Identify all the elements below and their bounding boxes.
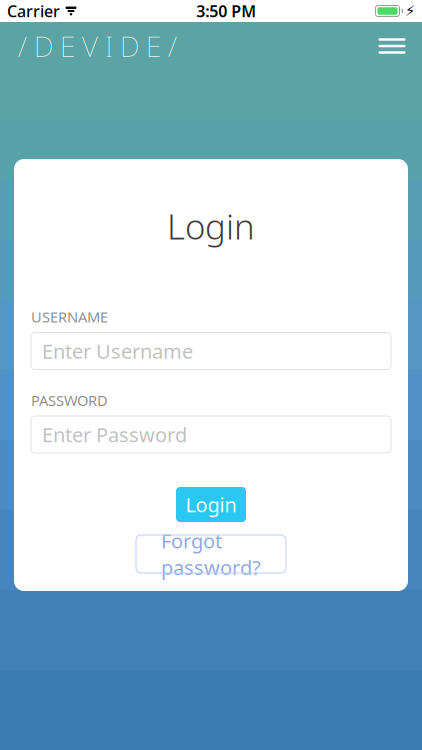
button[interactable]: Forgot password?	[136, 535, 286, 573]
staticText: Carrier	[7, 0, 60, 22]
staticText: PASSWORD	[31, 390, 108, 410]
staticText: Login	[167, 203, 255, 249]
button[interactable]: Enter Username	[31, 332, 391, 369]
staticText: USERNAME	[31, 307, 108, 326]
staticText: Enter Password	[42, 421, 187, 448]
staticText: 3:50 PM	[196, 0, 256, 22]
staticText: Enter Username	[42, 338, 193, 364]
staticText: ⚡︎	[405, 3, 415, 19]
staticText: Forgot password?	[161, 527, 261, 580]
staticText: Login	[185, 491, 236, 518]
staticText: / D E V I D E /	[18, 27, 177, 65]
button[interactable]: Login	[176, 487, 246, 522]
button[interactable]: Enter Password	[31, 416, 391, 453]
button[interactable]: Menu	[370, 24, 414, 68]
